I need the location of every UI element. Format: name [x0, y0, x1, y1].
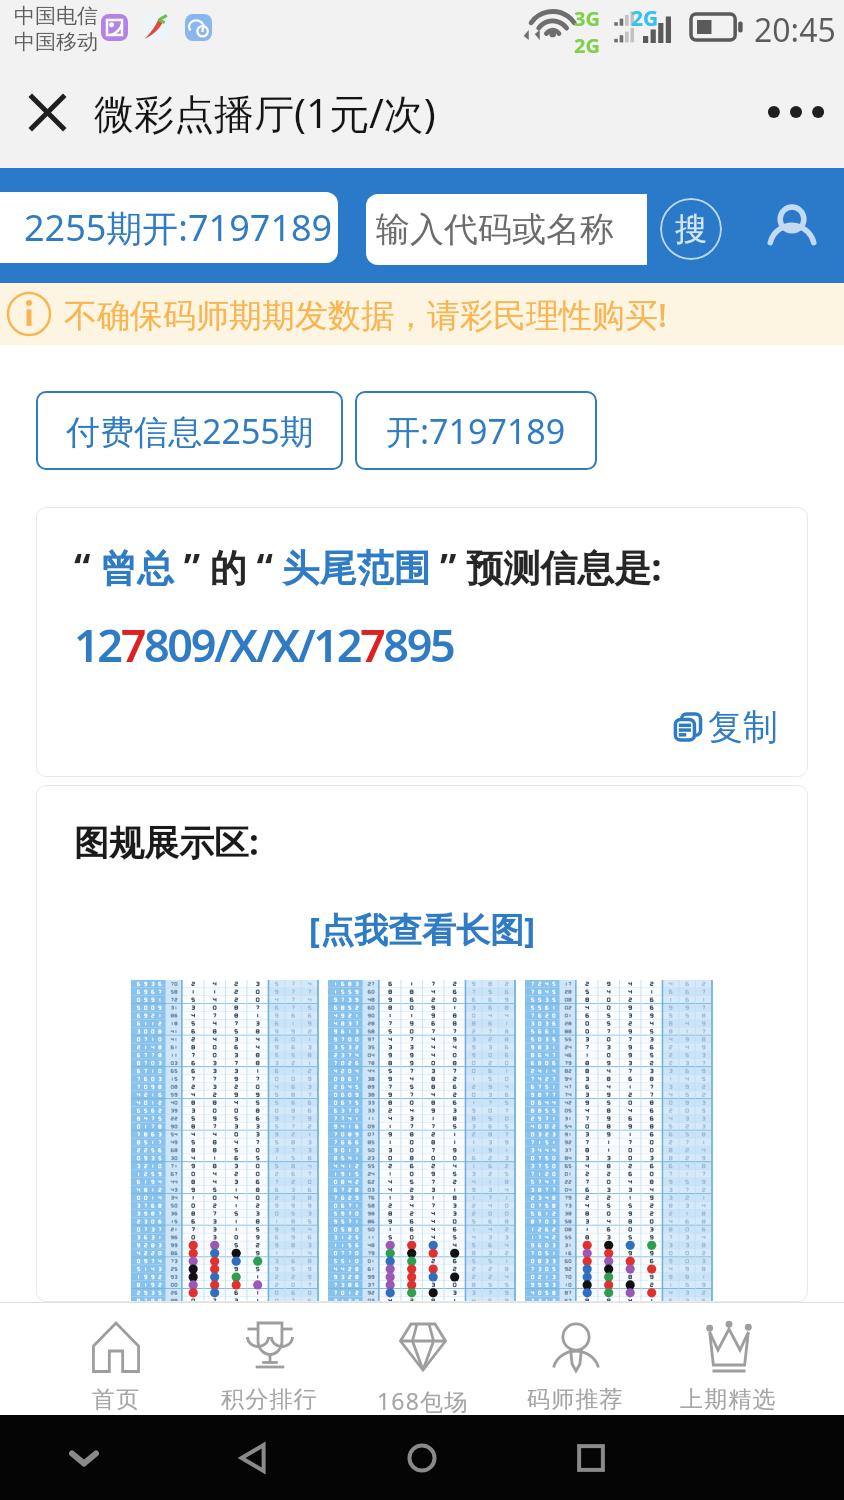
- staticText: 搜: [675, 209, 707, 249]
- staticText: “ 曾总 ” 的 “ 头尾范围 ” 预测信息是:: [74, 541, 662, 592]
- staticText: 2G: [574, 32, 600, 56]
- staticText: 输入代码或名称: [376, 208, 614, 251]
- staticText: 2G: [631, 4, 659, 33]
- button[interactable]: 付费信息2255期: [36, 391, 343, 470]
- staticText: 图规展示区:: [74, 818, 259, 866]
- staticText: 2255期开:7197189: [24, 203, 333, 252]
- button[interactable]: Close: [0, 65, 94, 159]
- staticText: 中国电信: [14, 3, 98, 29]
- button[interactable]: 输入代码或名称: [366, 194, 647, 265]
- button[interactable]: Home: [337, 1415, 506, 1500]
- staticText: 开:7197189: [386, 408, 566, 454]
- button[interactable]: Back: [168, 1415, 337, 1500]
- button[interactable]: 码师推荐: [499, 1303, 652, 1415]
- button[interactable]: 首页: [39, 1303, 193, 1415]
- staticText: 付费信息2255期: [66, 408, 314, 454]
- button[interactable]: 168包场: [346, 1303, 499, 1415]
- staticText: 码师推荐: [527, 1385, 624, 1414]
- button[interactable]: [点我查看长图]: [36, 906, 808, 952]
- button[interactable]: 2255期开:7197189: [0, 192, 338, 263]
- staticText: 20:45: [754, 8, 836, 52]
- button[interactable]: 开:7197189: [355, 391, 597, 470]
- staticText: 首页: [92, 1385, 141, 1414]
- staticText: 不确保码师期期发数据，请彩民理性购买!: [64, 292, 668, 337]
- button[interactable]: More options: [748, 64, 844, 160]
- button[interactable]: Profile: [756, 194, 828, 266]
- button[interactable]: 上期精选: [652, 1303, 805, 1415]
- staticText: 中国移动: [14, 29, 98, 55]
- button[interactable]: Search: [660, 198, 722, 260]
- button[interactable]: Hide keyboard: [0, 1415, 168, 1500]
- staticText: 上期精选: [680, 1385, 777, 1414]
- button[interactable]: 复制: [672, 705, 778, 749]
- staticText: 127809/X/X/127895: [74, 614, 454, 675]
- staticText: 复制: [708, 705, 778, 749]
- staticText: 168包场: [377, 1385, 469, 1415]
- staticText: 积分排行: [221, 1385, 318, 1414]
- button[interactable]: Recents: [506, 1415, 675, 1500]
- staticText: 3G: [574, 5, 600, 32]
- button[interactable]: 积分排行: [193, 1303, 346, 1415]
- staticText: 微彩点播厅(1元/次): [94, 85, 436, 140]
